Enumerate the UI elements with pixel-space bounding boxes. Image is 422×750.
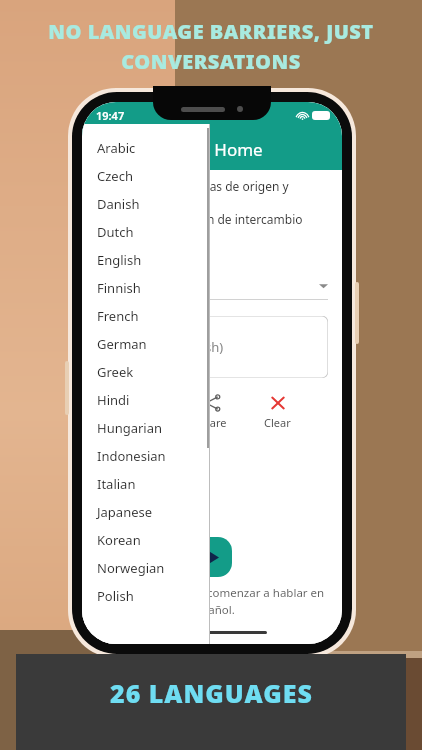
staticText: Copy bbox=[133, 415, 159, 430]
staticText: English bbox=[97, 251, 142, 269]
button[interactable]: Arabic bbox=[82, 134, 210, 162]
staticText: Finnish bbox=[97, 279, 141, 297]
button[interactable]: Italian bbox=[82, 470, 210, 498]
staticText: 26 LANGUAGES bbox=[110, 676, 313, 710]
staticText: Pulsa el botón para comenzar a hablar en… bbox=[96, 585, 328, 617]
button[interactable]: French bbox=[82, 302, 210, 330]
button[interactable]: Indonesian bbox=[82, 442, 210, 470]
button[interactable]: Finnish bbox=[82, 274, 210, 302]
button[interactable]: Polish bbox=[82, 582, 210, 610]
button[interactable]: Dutch bbox=[82, 218, 210, 246]
staticText: Hungarian bbox=[97, 419, 163, 437]
staticText: NO LANGUAGE BARRIERS, JUST bbox=[48, 18, 374, 45]
staticText: Indonesian bbox=[97, 447, 166, 465]
staticText: Selecciona los idiomas de origen y desti… bbox=[96, 178, 328, 262]
button[interactable]: English bbox=[82, 246, 210, 274]
button[interactable]: Copy bbox=[127, 392, 165, 432]
button[interactable]: Hungarian bbox=[82, 414, 210, 442]
staticText: Share bbox=[197, 415, 227, 430]
staticText: Conversación: bbox=[96, 442, 181, 458]
staticText: Norwegian bbox=[97, 559, 165, 577]
staticText: Korean bbox=[97, 531, 141, 549]
button[interactable]: Japanese bbox=[82, 498, 210, 526]
button[interactable]: Share bbox=[191, 392, 233, 432]
staticText: Conversations Home bbox=[96, 138, 263, 161]
button[interactable]: Spanish bbox=[96, 276, 328, 300]
staticText: Japanese bbox=[97, 503, 153, 521]
staticText: CONVERSATIONS bbox=[121, 48, 301, 75]
staticText: Hindi bbox=[97, 391, 130, 409]
staticText: Czech bbox=[97, 167, 133, 185]
staticText: Clear bbox=[264, 415, 291, 430]
staticText: German bbox=[97, 335, 147, 353]
staticText: Dutch bbox=[97, 223, 134, 241]
staticText: French bbox=[97, 307, 139, 325]
staticText: Danish bbox=[97, 195, 140, 213]
button[interactable]: Start conversation bbox=[192, 537, 232, 577]
staticText: Polish bbox=[97, 587, 134, 605]
button[interactable]: Translate (Spanish) bbox=[96, 316, 328, 378]
button[interactable]: Danish bbox=[82, 190, 210, 218]
button[interactable]: Hindi bbox=[82, 386, 210, 414]
staticText: Translate (Spanish) bbox=[108, 338, 224, 356]
button[interactable]: Norwegian bbox=[82, 554, 210, 582]
button[interactable]: Greek bbox=[82, 358, 210, 386]
staticText: Greek bbox=[97, 363, 134, 381]
staticText: Arabic bbox=[97, 139, 136, 157]
staticText: 19:47 bbox=[96, 108, 125, 123]
button[interactable]: Clear bbox=[258, 392, 297, 432]
button[interactable]: Korean bbox=[82, 526, 210, 554]
staticText: Spanish bbox=[120, 276, 169, 294]
staticText: Italian bbox=[97, 475, 136, 493]
button[interactable]: Czech bbox=[82, 162, 210, 190]
button[interactable]: German bbox=[82, 330, 210, 358]
